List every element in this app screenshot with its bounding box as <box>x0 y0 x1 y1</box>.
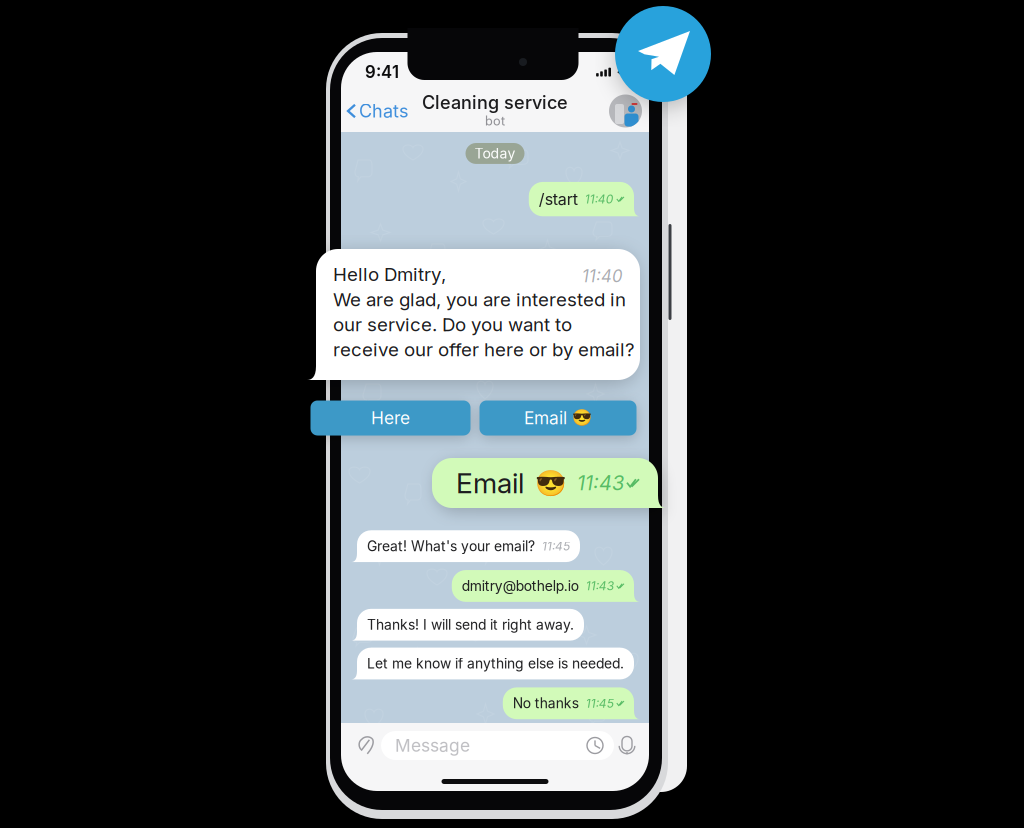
staticText: Here <box>371 407 410 428</box>
button[interactable]: Email <box>479 400 636 435</box>
staticText: Email <box>456 466 524 500</box>
staticText: dmitry@bothelp.io <box>462 578 579 594</box>
staticText: Great! What's your email? <box>367 538 535 555</box>
button[interactable]: Record voice message <box>614 731 640 759</box>
button[interactable]: Here <box>310 400 470 435</box>
staticText: 😎 <box>572 409 592 427</box>
staticText: Cleaning service <box>422 91 568 113</box>
staticText: 😎 <box>535 468 567 498</box>
button[interactable]: Chat profile <box>609 94 642 127</box>
staticText: /start <box>539 189 578 209</box>
staticText: 11:43 <box>577 471 624 495</box>
staticText: No thanks <box>513 695 579 712</box>
staticText: Thanks! I will send it right away. <box>367 616 574 633</box>
staticText: 9:41 <box>365 62 399 82</box>
staticText: Email <box>524 407 567 428</box>
staticText: Hello Dmitry, <box>333 263 446 286</box>
staticText: 11:45 <box>542 539 570 553</box>
staticText: Let me know if anything else is needed. <box>367 655 624 672</box>
staticText: Today <box>474 145 515 162</box>
staticText: 11:40 <box>585 192 614 206</box>
staticText: our service. Do you want to <box>333 313 572 336</box>
staticText: 11:45 <box>586 696 614 710</box>
button[interactable]: Schedule <box>587 737 603 753</box>
staticText: Chats <box>359 100 409 122</box>
staticText: Message <box>395 735 470 756</box>
staticText: 11:40 <box>582 266 623 286</box>
staticText: receive our offer here or by email? <box>333 338 635 361</box>
staticText: bot <box>485 113 505 128</box>
button[interactable]: Chats <box>341 91 416 131</box>
button[interactable]: Attach <box>353 731 378 760</box>
staticText: We are glad, you are interested in <box>333 288 626 311</box>
staticText: 11:43 <box>586 579 614 593</box>
